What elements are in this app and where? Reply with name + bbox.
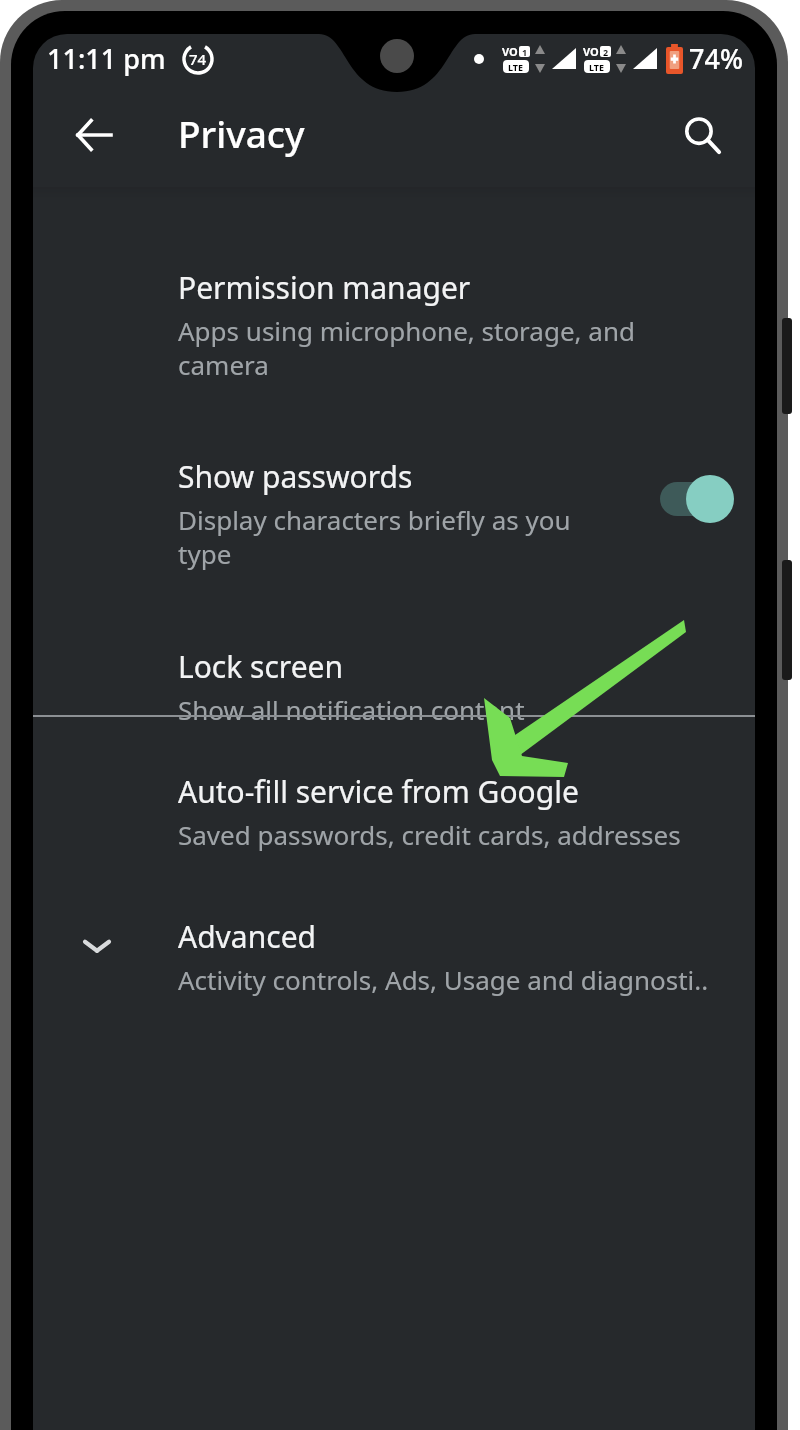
button[interactable] bbox=[658, 474, 744, 524]
staticText: Show all notification content bbox=[178, 692, 525, 727]
staticText: Permission manager bbox=[178, 267, 471, 308]
staticText: Apps using microphone, storage, and came… bbox=[178, 313, 635, 383]
button[interactable]: Show passwords bbox=[33, 434, 755, 589]
button[interactable]: Permission manager bbox=[33, 245, 755, 395]
button[interactable]: Auto-fill service from Google bbox=[33, 749, 755, 869]
staticText: VO bbox=[583, 44, 599, 59]
other: Expand Advanced bbox=[69, 918, 125, 974]
staticText: Lock screen bbox=[178, 646, 344, 687]
staticText: VO bbox=[502, 44, 518, 59]
staticText: LTE bbox=[508, 61, 524, 73]
button[interactable]: Back bbox=[63, 104, 125, 166]
staticText: LTE bbox=[589, 61, 605, 73]
staticText: Activity controls, Ads, Usage and diagno… bbox=[178, 962, 709, 997]
staticText: 74 bbox=[189, 49, 207, 69]
staticText: Auto-fill service from Google bbox=[178, 771, 579, 812]
staticText: Privacy bbox=[178, 108, 305, 158]
button[interactable]: Lock screen bbox=[33, 624, 755, 739]
staticText: Show passwords bbox=[178, 456, 413, 497]
staticText: 2 bbox=[603, 46, 609, 57]
button[interactable]: Expand Advanced bbox=[33, 896, 755, 1016]
staticText: Advanced bbox=[178, 916, 316, 957]
staticText: Saved passwords, credit cards, addresses bbox=[178, 817, 681, 852]
staticText: Display characters briefly as you type bbox=[178, 502, 571, 572]
staticText: 1 bbox=[522, 46, 528, 57]
button[interactable]: Search bbox=[671, 104, 733, 166]
staticText: 74% bbox=[689, 40, 743, 77]
staticText: 11:11 pm bbox=[47, 40, 166, 77]
